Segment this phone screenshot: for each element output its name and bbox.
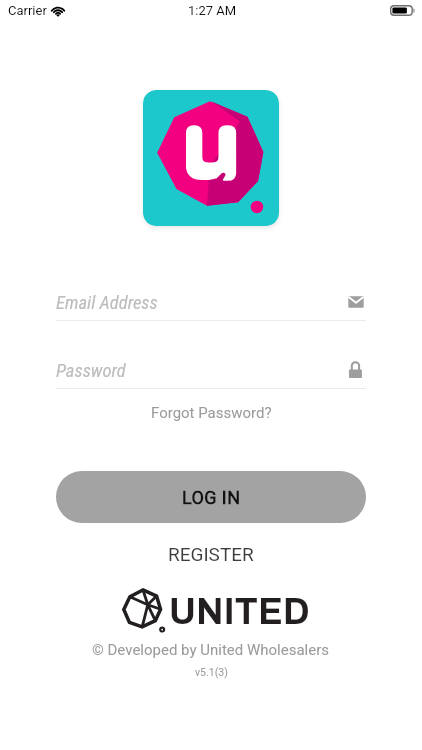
- staticText: Carrier: [8, 3, 47, 18]
- staticText: LOG IN: [182, 487, 241, 508]
- staticText: v5.1(3): [195, 666, 228, 678]
- staticText: 1:27 AM: [188, 3, 237, 18]
- button[interactable]: Forgot Password?: [139, 398, 284, 428]
- other: Email: [345, 291, 367, 313]
- staticText: Password: [56, 360, 126, 382]
- button[interactable]: REGISTER: [154, 537, 268, 571]
- staticText: UNITED: [169, 592, 310, 631]
- other: Password: [345, 359, 367, 381]
- staticText: REGISTER: [168, 543, 254, 565]
- staticText: Email Address: [56, 292, 158, 314]
- button[interactable]: LOG IN: [56, 471, 366, 523]
- staticText: © Developed by United Wholesalers: [92, 641, 330, 659]
- staticText: Forgot Password?: [151, 404, 272, 422]
